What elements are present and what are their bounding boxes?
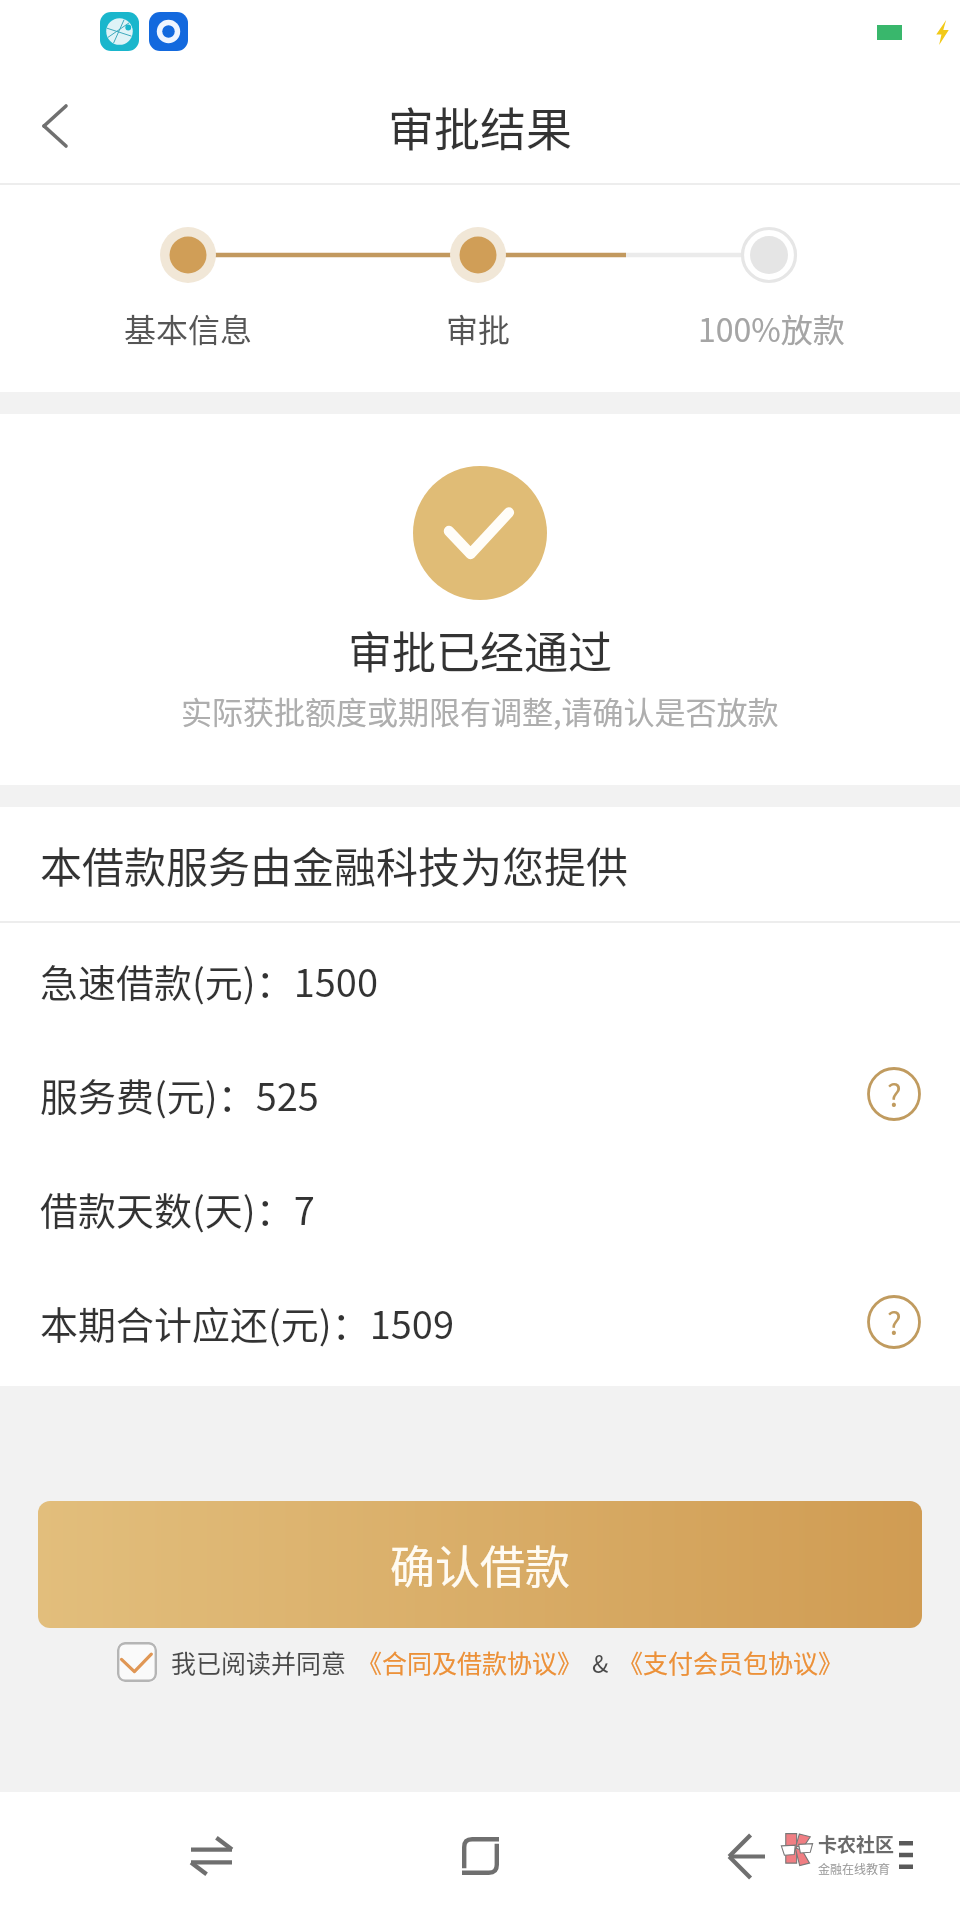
- button[interactable]: 《支付会员包协议》: [618, 1644, 844, 1680]
- staticText: 急速借款(元)：1500: [40, 953, 379, 1008]
- button[interactable]: Recent apps: [440, 1816, 520, 1896]
- staticText: 100%放款: [698, 305, 845, 351]
- button[interactable]: Help: [864, 1292, 924, 1352]
- staticText: ?: [887, 1299, 902, 1344]
- button[interactable]: Switch apps: [171, 1816, 251, 1896]
- button[interactable]: Back: [0, 71, 110, 181]
- button[interactable]: 确认借款: [38, 1501, 922, 1628]
- staticText: 借款天数(天)：7: [40, 1181, 315, 1236]
- button[interactable]: [117, 1642, 157, 1682]
- staticText: 实际获批额度或期限有调整,请确认是否放款: [181, 688, 779, 733]
- staticText: 确认借款: [390, 1532, 571, 1597]
- staticText: 基本信息: [124, 305, 253, 351]
- staticText: 卡农社区: [818, 1830, 895, 1858]
- staticText: 本期合计应还(元)：1509: [40, 1295, 455, 1350]
- staticText: 本借款服务由金融科技为您提供: [40, 834, 629, 895]
- staticText: 审批: [446, 305, 511, 351]
- staticText: 审批已经通过: [348, 618, 612, 682]
- staticText: 审批结果: [388, 93, 572, 160]
- staticText: 服务费(元)：525: [40, 1067, 319, 1122]
- button[interactable]: 《合同及借款协议》: [357, 1644, 583, 1680]
- staticText: 金融在线教育: [818, 1860, 891, 1877]
- button[interactable]: Help: [864, 1064, 924, 1124]
- staticText: ?: [887, 1071, 902, 1116]
- staticText: 我已阅读并同意: [171, 1644, 347, 1680]
- staticText: &: [592, 1645, 609, 1680]
- button[interactable]: Back: [706, 1816, 786, 1896]
